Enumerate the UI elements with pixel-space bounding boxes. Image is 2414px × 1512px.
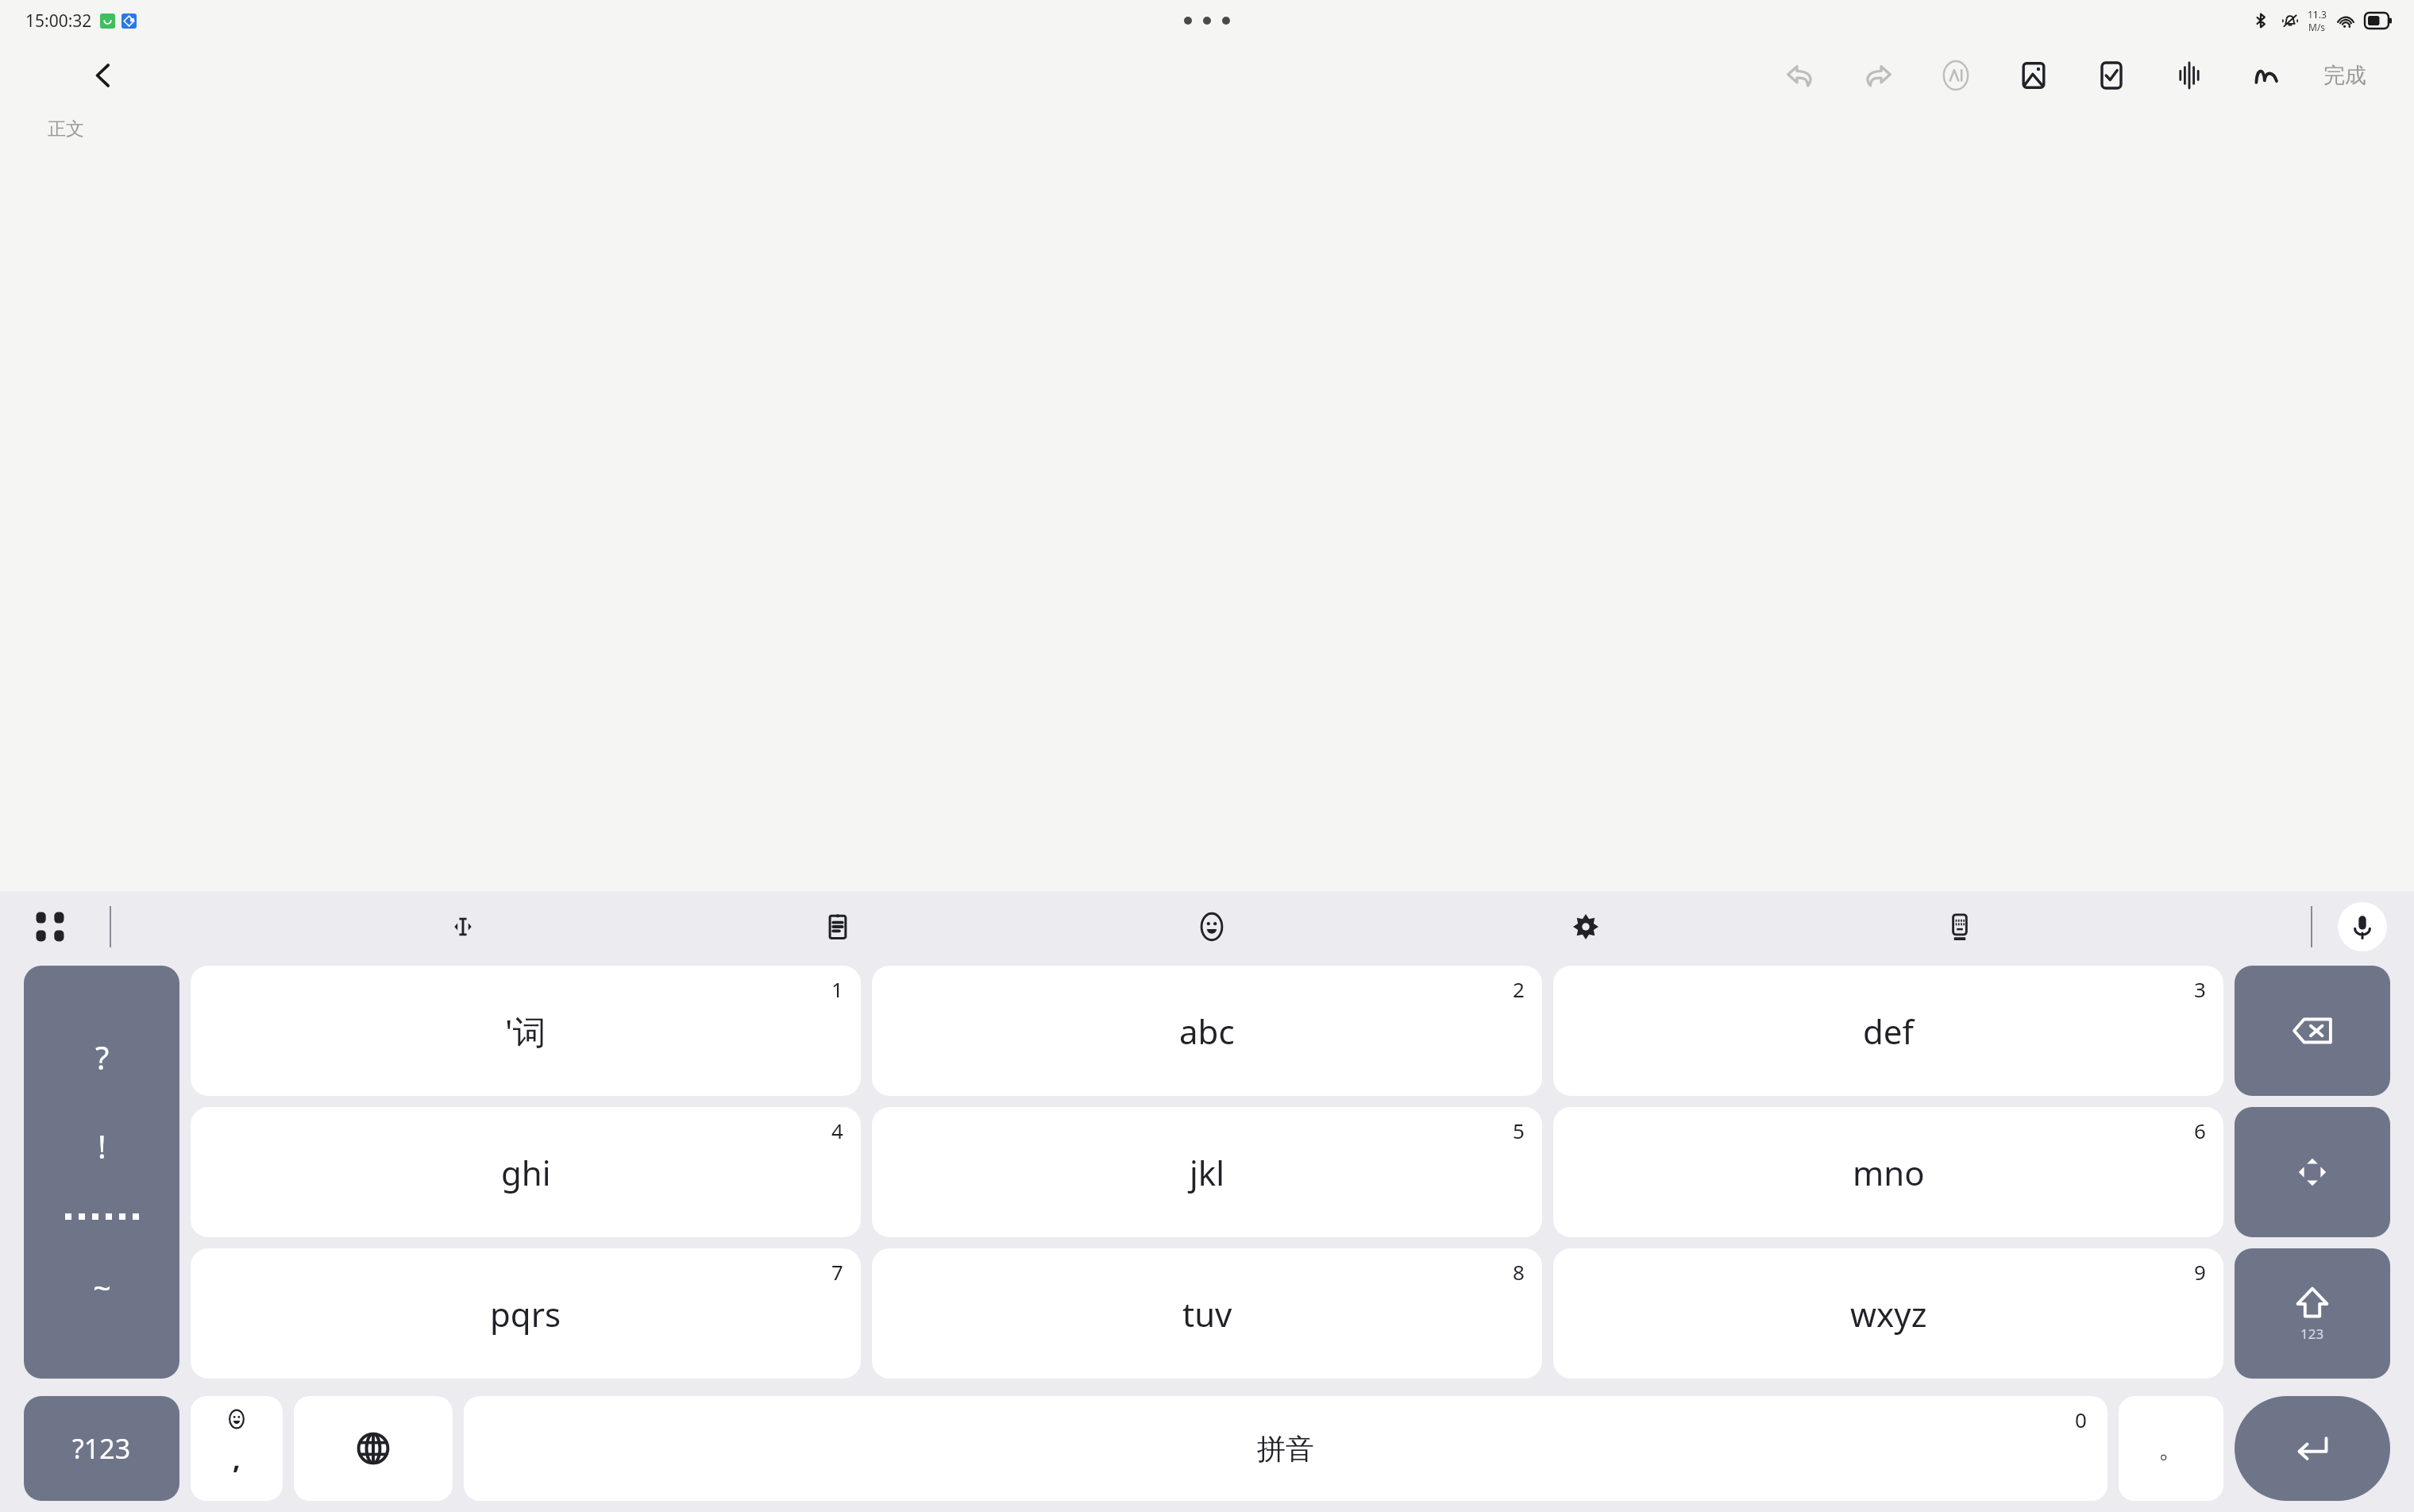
button[interactable]: 7 [191, 1248, 861, 1379]
button[interactable]: Undo [1779, 54, 1822, 97]
staticText: 正文 [48, 118, 84, 141]
button[interactable]: 1 [191, 966, 861, 1096]
staticText: 1 [831, 975, 843, 1003]
button[interactable]: Emoji [1189, 904, 1235, 950]
button[interactable]: Move cursor [440, 904, 486, 950]
button[interactable]: AI assistant [1934, 54, 1977, 97]
staticText: ?123 [72, 1430, 131, 1467]
staticText: 8 [1513, 1258, 1525, 1286]
staticText: mno [1853, 1150, 1925, 1195]
button[interactable]: Record audio [2168, 54, 2211, 97]
button[interactable]: Switch keyboard [1937, 904, 1983, 950]
staticText: ? [95, 1036, 110, 1078]
button[interactable]: Handwriting [2246, 54, 2289, 97]
staticText: 0 [2075, 1406, 2087, 1433]
staticText: ! [98, 1124, 106, 1167]
staticText: jkl [1190, 1150, 1225, 1195]
staticText: 完成 [2323, 62, 2366, 89]
button[interactable]: Clipboard [815, 904, 861, 950]
button[interactable]: Checklist [2090, 54, 2133, 97]
staticText: 。 [2158, 1433, 2184, 1464]
staticText: 2 [1513, 975, 1525, 1003]
staticText: 7 [831, 1258, 843, 1286]
button[interactable]: Move selection [2235, 1107, 2390, 1237]
button[interactable]: 9 [1553, 1248, 2223, 1379]
button[interactable]: 完成 [2316, 56, 2374, 95]
staticText: wxyz [1850, 1291, 1927, 1336]
button[interactable]: 6 [1553, 1107, 2223, 1237]
button[interactable]: 3 [1553, 966, 2223, 1096]
staticText: pqrs [490, 1291, 561, 1336]
button[interactable]: Redo [1857, 54, 1899, 97]
staticText: def [1863, 1009, 1914, 1054]
button[interactable]: Change language [294, 1396, 453, 1501]
button[interactable]: Enter [2235, 1396, 2390, 1501]
staticText: 5 [1513, 1117, 1525, 1144]
staticText: ghi [501, 1150, 551, 1195]
staticText: 4 [831, 1117, 843, 1144]
button[interactable]: Settings [1563, 904, 1609, 950]
button[interactable]: Shift numbers [2235, 1248, 2390, 1379]
staticText: 拼音 [1257, 1431, 1314, 1467]
button[interactable]: 5 [872, 1107, 1542, 1237]
button[interactable]: Punctuation [24, 966, 179, 1379]
button[interactable]: Insert image [2012, 54, 2055, 97]
staticText: ~ [93, 1266, 111, 1309]
staticText: 6 [2194, 1117, 2206, 1144]
staticText: tuv [1182, 1291, 1232, 1336]
staticText: 11.3 [2308, 8, 2327, 21]
staticText: abc [1179, 1009, 1235, 1054]
button[interactable]: 8 [872, 1248, 1542, 1379]
staticText: , [233, 1441, 241, 1477]
button[interactable]: 0 [464, 1396, 2107, 1501]
button[interactable]: Voice input [2338, 902, 2387, 951]
button[interactable]: Period [2119, 1396, 2223, 1501]
staticText: '词 [505, 1009, 546, 1054]
button[interactable]: ?123 [24, 1396, 179, 1501]
staticText: 9 [2194, 1258, 2206, 1286]
button[interactable]: Keyboard layouts [27, 904, 73, 950]
staticText: 123 [2300, 1325, 2324, 1343]
button[interactable]: Back [79, 52, 127, 99]
button[interactable]: 4 [191, 1107, 861, 1237]
staticText: 15:00:32 [25, 10, 92, 33]
staticText: M/s [2308, 21, 2326, 33]
staticText: 3 [2194, 975, 2206, 1003]
button[interactable]: 2 [872, 966, 1542, 1096]
button[interactable]: Comma and emoji [191, 1396, 283, 1501]
button[interactable]: Backspace [2235, 966, 2390, 1096]
